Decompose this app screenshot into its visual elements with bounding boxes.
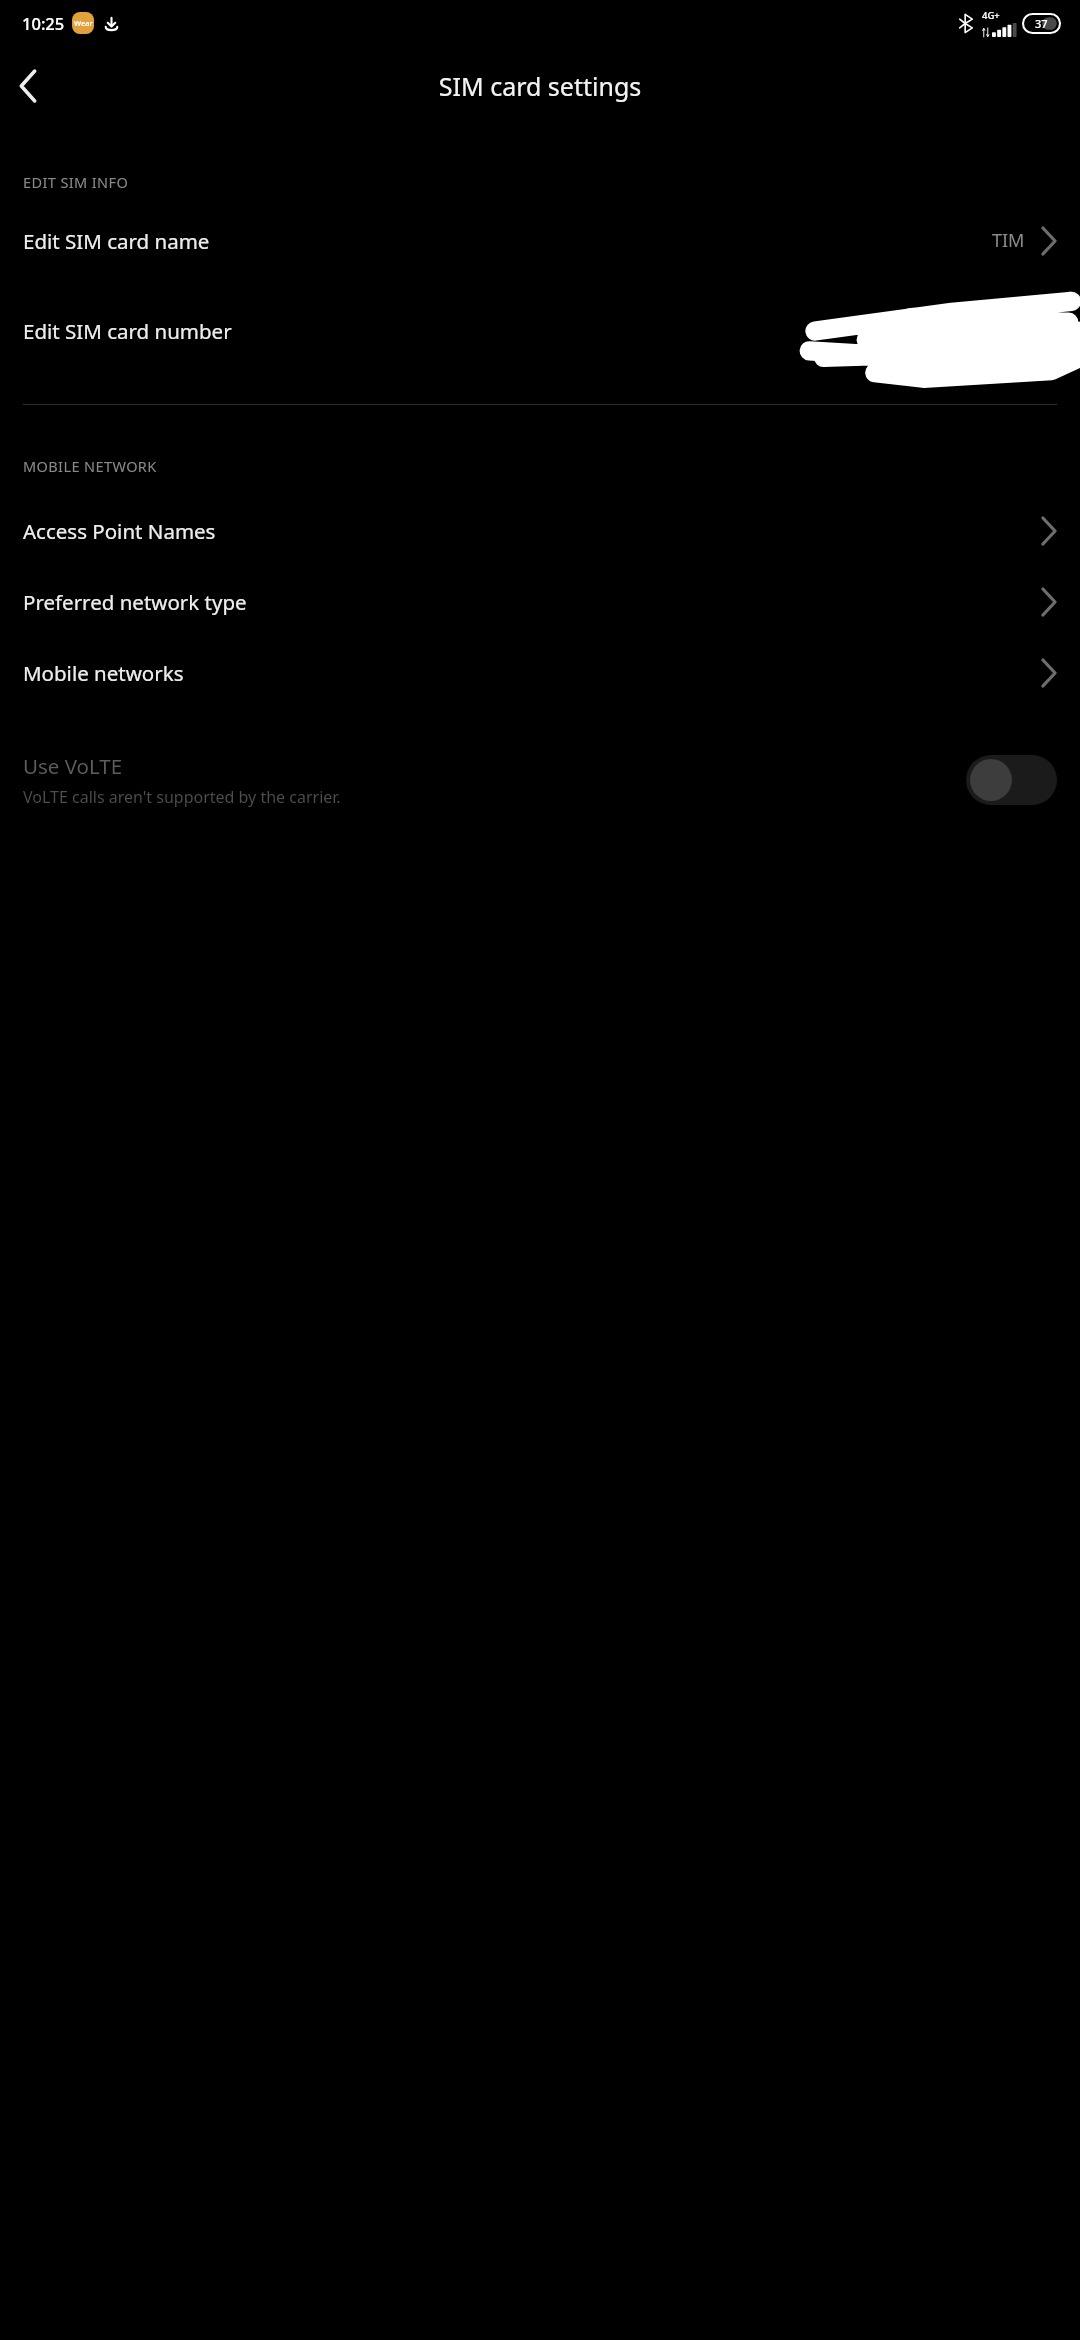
staticText: TIM [992,228,1025,253]
button[interactable]: Edit SIM card name [0,205,1080,276]
button[interactable]: Preferred network type [0,566,1080,637]
staticText: SIM card settings [0,69,1080,103]
staticText: Wear [74,18,93,28]
staticText: MOBILE NETWORK [23,456,157,476]
button[interactable]: Mobile networks [0,637,1080,708]
staticText: Edit SIM card name [23,227,992,255]
staticText: Edit SIM card number [23,317,795,345]
button[interactable]: Edit SIM card number [0,276,1080,386]
staticText: Access Point Names [23,517,1041,545]
staticText: 37 [1035,16,1048,31]
staticText: VoLTE calls aren't supported by the carr… [23,786,341,808]
staticText: Mobile networks [23,659,1041,687]
staticText: 4G+ [982,9,1000,22]
button[interactable]: Back [0,58,56,114]
staticText: Preferred network type [23,588,1041,616]
staticText: EDIT SIM INFO [23,172,129,192]
button[interactable]: Use VoLTE [0,730,1080,830]
staticText: Use VoLTE [23,752,123,780]
staticText: 10:25 [22,12,65,34]
button[interactable]: Use VoLTE toggle [966,755,1057,805]
button[interactable]: Access Point Names [0,495,1080,566]
